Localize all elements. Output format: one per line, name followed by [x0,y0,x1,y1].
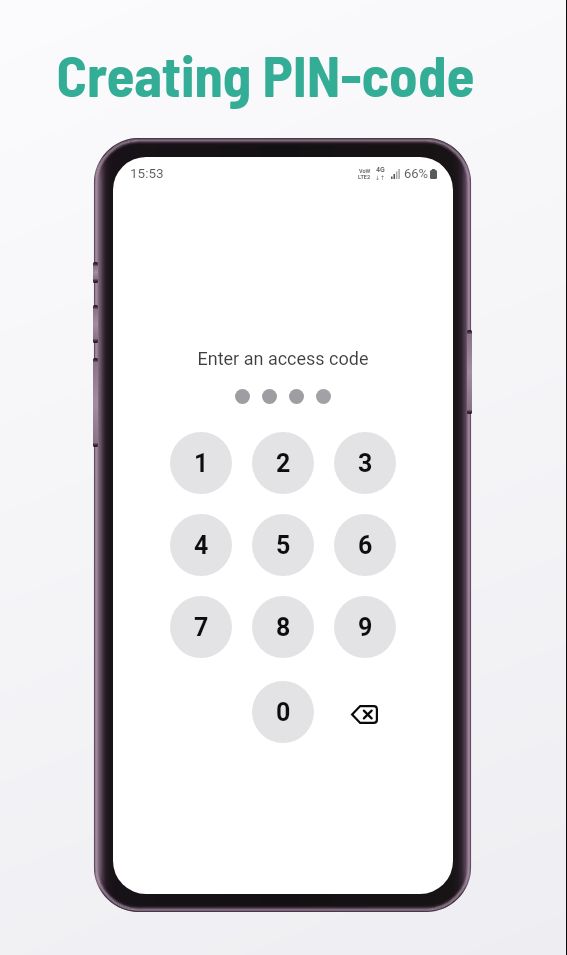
staticText: Creating PIN-code [0,40,549,108]
staticText: 2 [276,449,291,478]
staticText: 66% [404,166,429,181]
staticText: Enter an access code [113,348,453,369]
staticText: 5 [276,531,291,560]
staticText: 1 [194,449,209,478]
staticText: 6 [358,531,373,560]
button[interactable]: 0 [252,681,314,743]
staticText: 4G [376,166,385,174]
button[interactable]: 5 [252,514,314,576]
staticText: LTE2 [358,174,371,180]
staticText: 3 [358,449,373,478]
staticText: 7 [194,613,209,642]
staticText: 0 [276,698,291,727]
staticText: ↓↑ [375,174,386,181]
button[interactable]: 1 [170,432,232,494]
button[interactable]: 9 [334,596,396,658]
button[interactable]: Backspace [324,681,406,743]
staticText: 15:53 [130,165,164,181]
button[interactable]: 7 [170,596,232,658]
button[interactable]: 2 [252,432,314,494]
button[interactable]: 4 [170,514,232,576]
staticText: 4 [194,531,209,560]
button[interactable]: 3 [334,432,396,494]
button[interactable]: 6 [334,514,396,576]
staticText: 8 [276,613,291,642]
button[interactable]: 8 [252,596,314,658]
staticText: 9 [358,613,373,642]
staticText: VoW [359,168,371,174]
